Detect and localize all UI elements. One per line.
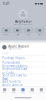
button[interactable]: More: [35, 27, 45, 36]
staticText: Purchase History: [2, 56, 24, 60]
staticText: Send Gift Card by Email: [2, 74, 26, 81]
staticText: Search: [38, 92, 44, 94]
staticText: mary.parker@icloud.com: [14, 23, 32, 25]
staticText: Family: [15, 34, 19, 36]
button[interactable]: Arcade: [28, 88, 37, 94]
staticText: Account: [2, 52, 8, 54]
button[interactable]: Apple Account: [0, 45, 46, 50]
button[interactable]: Add Funds to Apple Account: [0, 80, 46, 87]
button[interactable]: Purchase History: [0, 56, 46, 60]
staticText: Apps: [21, 92, 25, 94]
button[interactable]: Redeem Gift Card or Code: [0, 67, 46, 74]
staticText: Personalized Recommendations: [2, 61, 27, 68]
button[interactable]: Family: [12, 27, 22, 36]
staticText: Cards: [4, 34, 9, 36]
staticText: More: [38, 34, 42, 36]
button[interactable]: Search: [37, 88, 46, 94]
button[interactable]: Pay: [24, 27, 34, 36]
button[interactable]: Send Gift Card by Email: [0, 74, 46, 81]
staticText: Pay: [27, 34, 30, 36]
staticText: Add Funds to Apple Account: [2, 80, 23, 87]
staticText: Today: [2, 92, 7, 94]
button[interactable]: Apps: [18, 88, 28, 94]
button[interactable]: Games: [9, 88, 18, 94]
button[interactable]: Personalized Recommendations: [0, 61, 46, 68]
staticText: Redeem Gift Card or Code: [2, 67, 27, 74]
staticText: Apple Account: [8, 45, 29, 48]
staticText: Arcade: [29, 92, 35, 94]
staticText: Mary Parker: [14, 20, 31, 23]
staticText: Games: [11, 92, 16, 94]
staticText: 9:41: [3, 2, 10, 5]
staticText: Settings, Purchases: [8, 48, 22, 50]
button[interactable]: Today: [0, 88, 9, 94]
button[interactable]: Cards: [1, 27, 11, 36]
